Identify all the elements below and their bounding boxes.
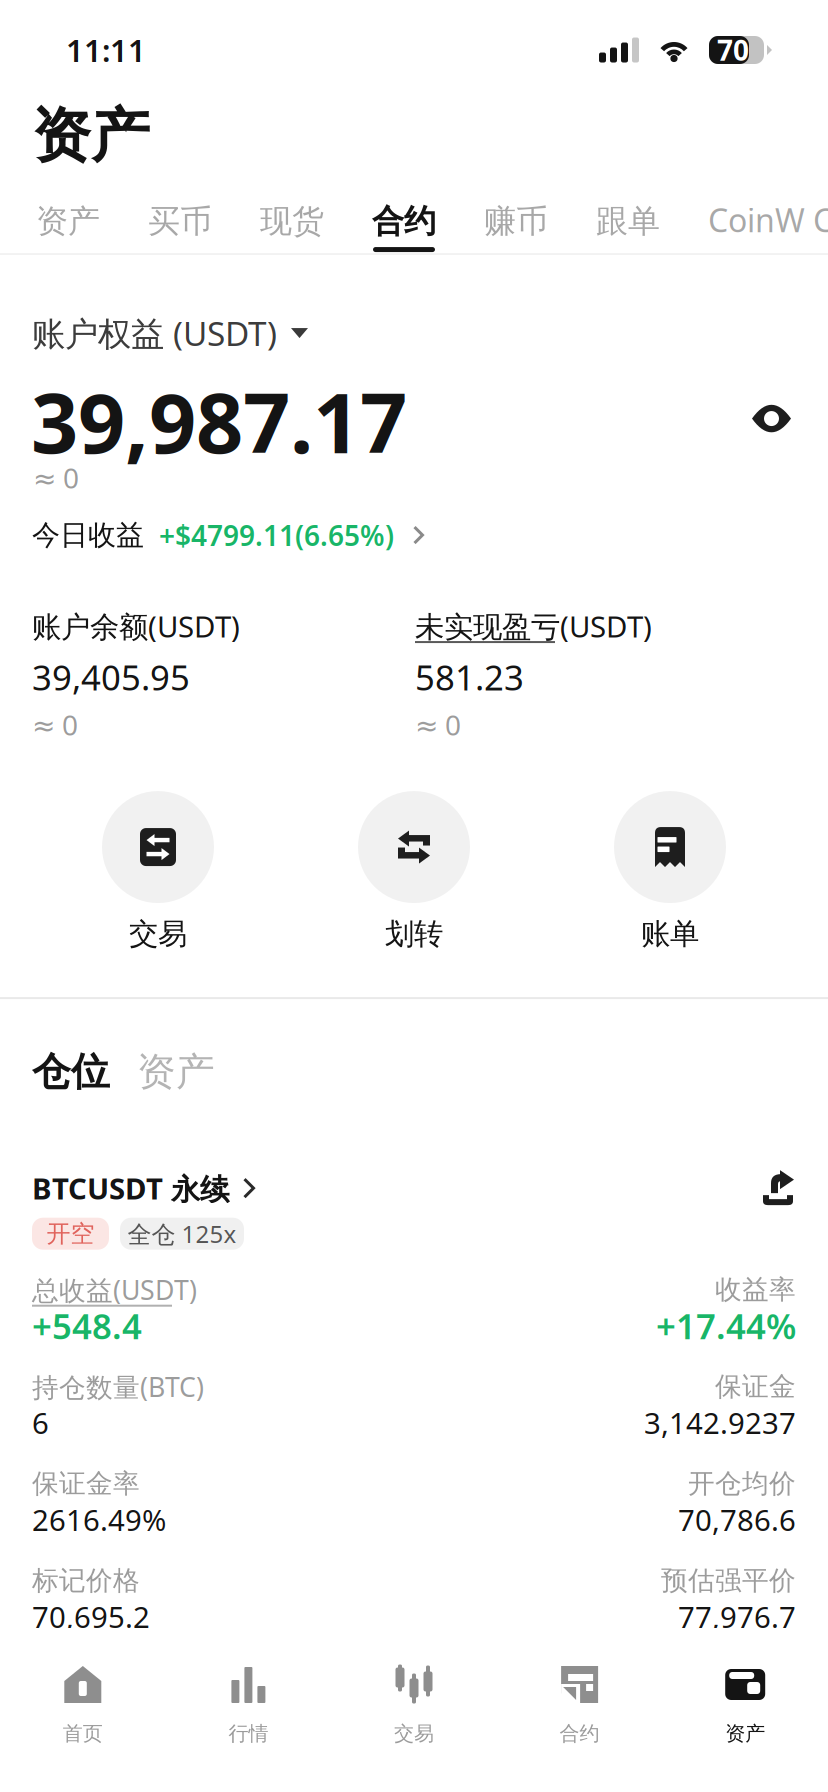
- button[interactable]: 资产: [36, 190, 100, 252]
- staticText: 划转: [385, 916, 443, 952]
- staticText: 资产: [137, 1048, 215, 1096]
- staticText: 总收益(USDT): [32, 1272, 197, 1307]
- button[interactable]: 划转: [324, 791, 504, 952]
- staticText: 保证金率: [32, 1467, 140, 1500]
- staticText: 账户权益 (USDT): [32, 311, 277, 355]
- staticText: 开仓均价: [688, 1467, 796, 1500]
- staticText: ≈ 0: [32, 706, 78, 743]
- staticText: 资产: [725, 1721, 765, 1746]
- staticText: 持仓时间: [688, 1661, 796, 1694]
- staticText: 持仓数量(BTC): [32, 1369, 204, 1404]
- staticText: +$4799.11(6.65%): [159, 516, 394, 554]
- staticText: 77,976.7: [32, 1694, 150, 1733]
- staticText: 6: [32, 1403, 49, 1442]
- staticText: ≈ 0: [415, 706, 461, 743]
- staticText: 行情: [228, 1721, 268, 1746]
- staticText: 账单: [641, 916, 699, 952]
- button[interactable]: 合约: [372, 190, 436, 252]
- staticText: 11:11: [66, 30, 146, 70]
- staticText: 赚币: [484, 202, 548, 241]
- staticText: +17.44%: [656, 1303, 796, 1349]
- staticText: 70,786.6: [678, 1500, 796, 1539]
- button[interactable]: 交易: [68, 791, 248, 952]
- staticText: 仓位: [32, 1048, 110, 1096]
- staticText: 首页: [63, 1721, 103, 1746]
- staticText: 资产: [36, 202, 100, 241]
- staticText: 39,405.95: [32, 654, 190, 700]
- staticText: 70,695.2: [32, 1597, 150, 1636]
- button[interactable]: 合约: [497, 1628, 662, 1792]
- button[interactable]: 现货: [260, 190, 324, 252]
- button[interactable]: 账单: [580, 791, 760, 952]
- staticText: 合约: [372, 202, 436, 241]
- staticText: 70: [717, 31, 749, 69]
- button[interactable]: 买币: [148, 190, 212, 252]
- button[interactable]: 仓位: [32, 1048, 110, 1096]
- staticText: 强平价格: [32, 1661, 140, 1694]
- staticText: 2616.49%: [32, 1500, 166, 1539]
- staticText: ≈ 0: [33, 459, 79, 496]
- staticText: 3,142.9237: [644, 1403, 796, 1442]
- staticText: 账户余额(USDT): [32, 607, 240, 646]
- staticText: 39,987.17: [31, 366, 407, 476]
- button[interactable]: 行情: [166, 1628, 331, 1792]
- button[interactable]: 账户权益 (USDT): [32, 311, 308, 355]
- staticText: 77,976.7: [678, 1597, 796, 1636]
- button[interactable]: CoinW C: [708, 190, 828, 252]
- staticText: 交易: [129, 916, 187, 952]
- staticText: 收益率: [715, 1273, 796, 1306]
- button[interactable]: 首页: [0, 1628, 166, 1792]
- button[interactable]: 资产: [137, 1048, 215, 1096]
- staticText: 交易: [394, 1721, 434, 1746]
- staticText: CoinW C: [708, 199, 828, 241]
- staticText: 跟单: [596, 202, 660, 241]
- staticText: 开空: [46, 1219, 94, 1248]
- staticText: BTCUSDT 永续: [32, 1169, 229, 1208]
- staticText: 合约: [560, 1721, 600, 1746]
- button[interactable]: 赚币: [484, 190, 548, 252]
- staticText: 资产: [32, 100, 150, 172]
- staticText: 现货: [260, 202, 324, 241]
- staticText: +548.4: [32, 1303, 142, 1349]
- button[interactable]: 今日收益: [32, 513, 424, 557]
- staticText: 未实现盈亏(USDT): [415, 607, 652, 646]
- staticText: 2024-07-18: [642, 1694, 796, 1733]
- staticText: 保证金: [715, 1370, 796, 1403]
- button[interactable]: 资产: [662, 1628, 828, 1792]
- button[interactable]: Share: [763, 1170, 796, 1206]
- staticText: 全仓 125x: [127, 1218, 236, 1250]
- button[interactable]: 交易: [331, 1628, 497, 1792]
- button[interactable]: BTCUSDT 永续: [32, 1169, 255, 1208]
- staticText: 买币: [148, 202, 212, 241]
- button[interactable]: 跟单: [596, 190, 660, 252]
- staticText: 预估强平价: [661, 1564, 796, 1597]
- staticText: 今日收益: [32, 518, 144, 552]
- staticText: 标记价格: [32, 1564, 140, 1597]
- button[interactable]: Toggle balance visibility: [752, 403, 791, 434]
- staticText: 581.23: [415, 654, 524, 700]
